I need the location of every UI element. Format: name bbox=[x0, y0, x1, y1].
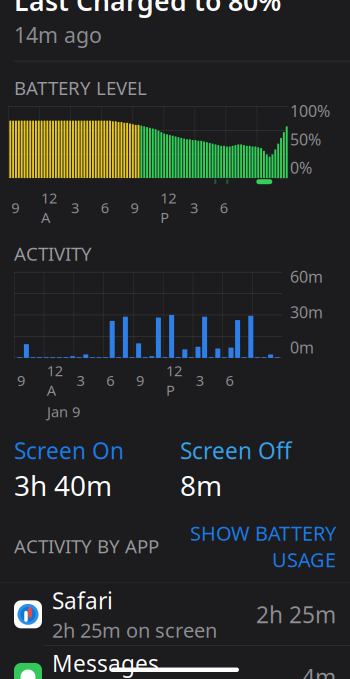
staticText: Jan 9 bbox=[47, 402, 80, 421]
staticText: 3 bbox=[196, 371, 204, 390]
staticText: 12 A bbox=[47, 361, 63, 400]
staticText: 9 bbox=[11, 198, 19, 217]
staticText: 9 bbox=[136, 371, 144, 390]
staticText: Screen Off bbox=[180, 435, 292, 465]
staticText: Safari bbox=[52, 585, 113, 616]
staticText: Messages bbox=[52, 648, 159, 678]
staticText: 3 bbox=[77, 371, 85, 390]
staticText: 6 bbox=[101, 198, 109, 217]
staticText: 0% bbox=[290, 157, 312, 178]
staticText: 2h 25m on screen bbox=[52, 617, 217, 643]
staticText: 3 bbox=[190, 198, 198, 217]
staticText: 12 P bbox=[160, 188, 176, 227]
staticText: ACTIVITY BY APP bbox=[14, 534, 159, 558]
staticText: 9 bbox=[130, 198, 138, 217]
staticText: 30m bbox=[290, 301, 323, 322]
staticText: 0m bbox=[290, 337, 314, 358]
staticText: 14m ago bbox=[14, 20, 102, 49]
staticText: ACTIVITY bbox=[14, 241, 92, 266]
staticText: 6 bbox=[106, 371, 114, 390]
staticText: 12 P bbox=[166, 361, 182, 400]
staticText: 3h 40m bbox=[14, 466, 112, 504]
button[interactable]: SHOW BATTERY bbox=[190, 520, 336, 573]
staticText: 6 bbox=[220, 198, 228, 217]
staticText: BATTERY LEVEL bbox=[14, 75, 147, 100]
staticText: 3 bbox=[71, 198, 79, 217]
staticText: Last Charged to 80% bbox=[14, 0, 281, 18]
staticText: 8m bbox=[180, 466, 222, 504]
staticText: 50% bbox=[290, 129, 321, 150]
staticText: 4m bbox=[302, 662, 336, 679]
staticText: Screen On bbox=[14, 435, 124, 465]
button[interactable]: Messages bbox=[0, 646, 350, 679]
staticText: 9 bbox=[17, 371, 25, 390]
staticText: 2h 25m bbox=[256, 599, 336, 629]
staticText: SHOW BATTERY bbox=[190, 520, 336, 546]
button[interactable]: Safari bbox=[0, 583, 350, 645]
staticText: 60m bbox=[290, 266, 323, 287]
staticText: 12 A bbox=[41, 188, 57, 227]
staticText: 100% bbox=[290, 100, 330, 121]
staticText: 6 bbox=[225, 371, 233, 390]
staticText: USAGE bbox=[272, 546, 336, 573]
